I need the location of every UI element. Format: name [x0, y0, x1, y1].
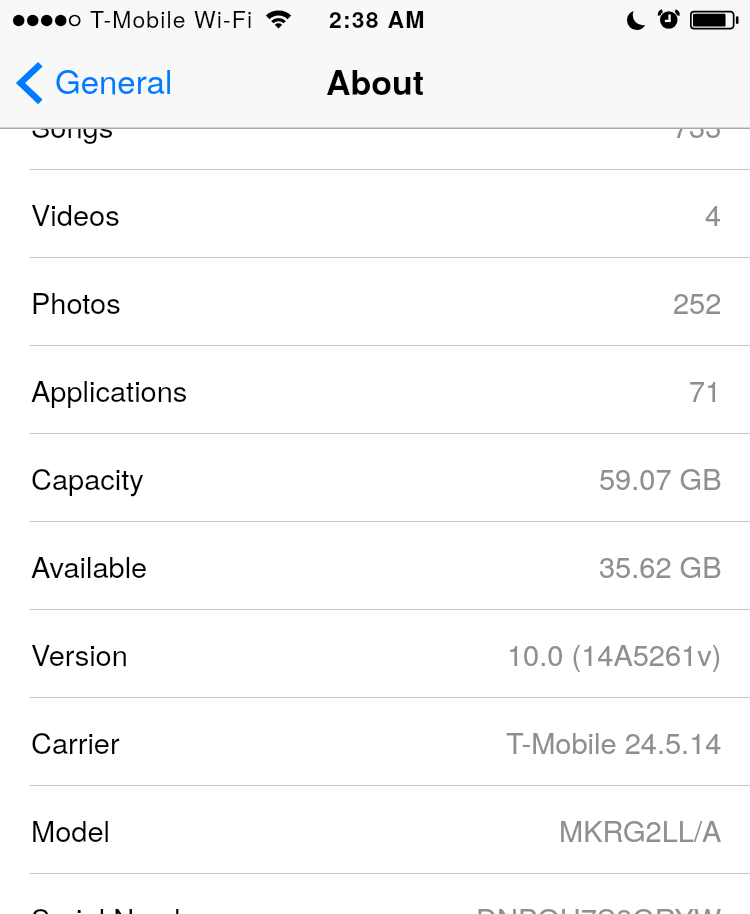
staticText: 35.62 GB [599, 545, 722, 587]
staticText: 733 [673, 105, 722, 147]
button[interactable]: Carrier [0, 698, 750, 786]
staticText: Available [31, 545, 148, 587]
staticText: T-Mobile Wi-Fi [90, 2, 254, 35]
staticText: General [55, 56, 173, 103]
staticText: About [326, 57, 425, 106]
staticText: Applications [31, 369, 188, 411]
button[interactable]: Capacity [0, 434, 750, 522]
staticText: MKRG2LL/A [559, 809, 722, 851]
staticText: 10.0 (14A5261v) [507, 633, 722, 675]
button[interactable]: Songs [0, 82, 750, 170]
button[interactable]: Version [0, 610, 750, 698]
staticText: Videos [31, 193, 120, 235]
button[interactable]: Available [0, 522, 750, 610]
staticText: Songs [31, 105, 114, 147]
staticText: Carrier [31, 721, 120, 763]
staticText: Serial Number [31, 897, 217, 914]
button[interactable]: Videos [0, 170, 750, 258]
staticText: T-Mobile 24.5.14 [506, 721, 722, 763]
staticText: DNPQH7S3GRYW [476, 897, 722, 914]
button[interactable]: Serial Number [0, 874, 750, 914]
staticText: 252 [673, 281, 722, 323]
staticText: Photos [31, 281, 121, 323]
staticText: 4 [705, 193, 722, 235]
button[interactable]: Applications [0, 346, 750, 434]
staticText: Model [31, 809, 110, 851]
staticText: Capacity [31, 457, 144, 499]
button[interactable]: Back to General [0, 56, 164, 103]
staticText: 59.07 GB [599, 457, 722, 499]
button[interactable]: Model [0, 786, 750, 874]
button[interactable]: Photos [0, 258, 750, 346]
staticText: Version [31, 633, 128, 675]
staticText: 71 [689, 369, 722, 411]
staticText: 2:38 AM [329, 2, 426, 35]
